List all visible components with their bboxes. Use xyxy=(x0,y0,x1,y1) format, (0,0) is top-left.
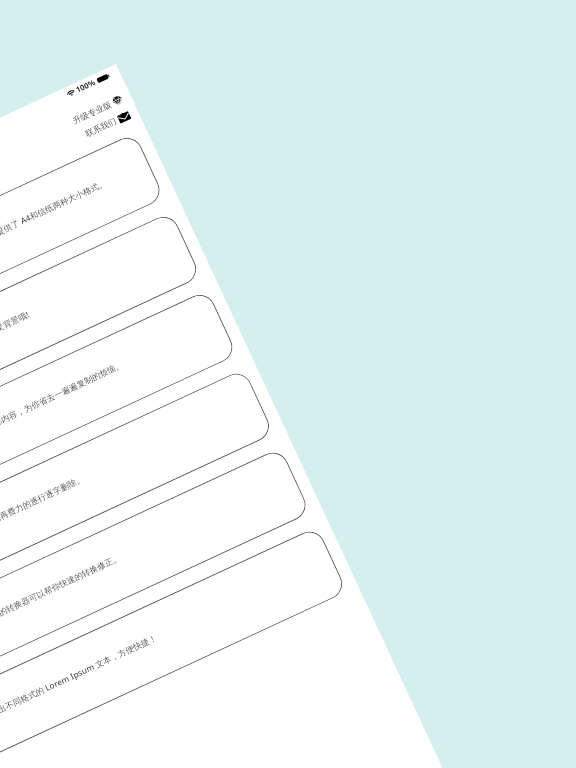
button[interactable]: 生成的占位文本支持直接导出为PDF文档保存或者分享，同时提供了 A4和信纸两种大… xyxy=(0,133,165,369)
button[interactable]: 当然可以，你不仅能调整字号和行距，还可以自定义背景哦! xyxy=(0,211,201,448)
staticText: 联系我们 xyxy=(84,115,119,139)
staticText: 生成的占位文本支持直接导出为PDF文档保存或者分享，同时提供了 A4和信纸两种大… xyxy=(0,176,109,332)
staticText: 当然可以，你不仅能调整字号和行距，还可以自定义背景哦! xyxy=(0,308,31,411)
other: Battery xyxy=(96,73,110,83)
staticText: 轻点一下清空按钮即可，不用再费力的逐行逐字删除。 xyxy=(0,473,87,568)
staticText: 一键导出不同格式的 Lorem Ipsum 文本，方便快捷！ xyxy=(0,631,159,726)
button[interactable]: 格式错乱时，内置的转换器可以帮你快速的转换修正。 xyxy=(0,447,311,683)
button[interactable]: 联系我们 xyxy=(84,109,131,139)
button[interactable]: 支持一次生成多段文字并且一键复制全部内容，为你省去一遍遍复制的烦恼。 xyxy=(0,289,238,526)
button[interactable]: 升级专业版 xyxy=(71,94,124,126)
button[interactable]: 一键导出不同格式的 Lorem Ipsum 文本，方便快捷！ xyxy=(0,526,347,762)
staticText: 格式错乱时，内置的转换器可以帮你快速的转换修正。 xyxy=(0,552,123,647)
other: Upgrade to Pro xyxy=(111,94,124,107)
other: Wi-Fi xyxy=(67,90,75,97)
staticText: 100% xyxy=(74,77,97,95)
other: Contact us xyxy=(117,110,131,124)
button[interactable]: 轻点一下清空按钮即可，不用再费力的逐行逐字删除。 xyxy=(0,368,274,604)
staticText: 支持一次生成多段文字并且一键复制全部内容，为你省去一遍遍复制的烦恼。 xyxy=(0,359,125,489)
staticText: 升级专业版 xyxy=(71,99,113,126)
